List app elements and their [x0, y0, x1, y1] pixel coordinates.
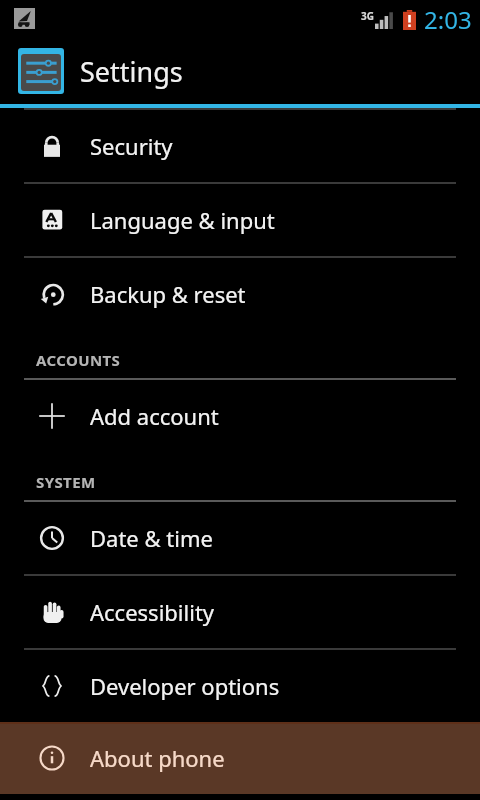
button[interactable]: Add account: [0, 380, 480, 452]
staticText: Add account: [90, 401, 219, 431]
button[interactable]: Backup & reset: [0, 258, 480, 330]
staticText: Backup & reset: [90, 279, 246, 309]
button[interactable]: Developer options: [0, 650, 480, 722]
staticText: Date & time: [90, 523, 213, 553]
staticText: Language & input: [90, 205, 275, 235]
staticText: Developer options: [90, 671, 280, 701]
staticText: SYSTEM: [36, 472, 96, 492]
staticText: Security: [90, 131, 173, 161]
button[interactable]: Language & input: [0, 184, 480, 256]
staticText: 2:03: [424, 3, 472, 36]
staticText: ACCOUNTS: [36, 350, 121, 370]
staticText: About phone: [90, 743, 225, 773]
button[interactable]: Accessibility: [0, 576, 480, 648]
staticText: Settings: [80, 53, 183, 90]
button[interactable]: About phone: [0, 722, 480, 794]
button[interactable]: Date & time: [0, 502, 480, 574]
staticText: Accessibility: [90, 597, 215, 627]
button[interactable]: Security: [0, 110, 480, 182]
staticText: 3G: [361, 9, 374, 23]
